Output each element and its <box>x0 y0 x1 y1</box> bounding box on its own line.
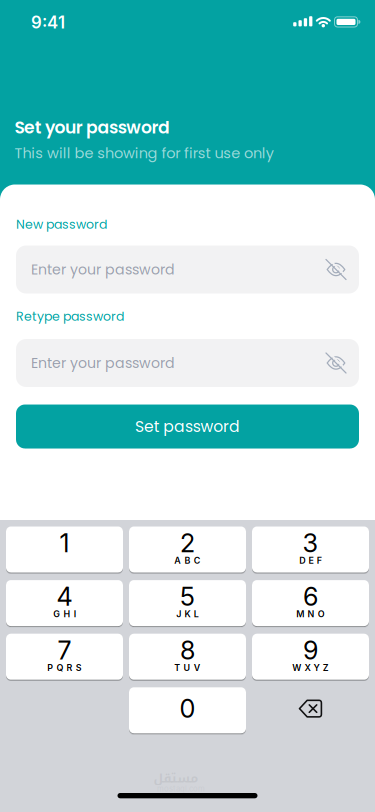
staticText: R <box>67 662 73 673</box>
staticText: 4 <box>56 581 72 612</box>
button[interactable]: 7 <box>6 634 123 680</box>
staticText: Set password <box>135 416 240 437</box>
staticText: T <box>174 662 180 673</box>
staticText: 8 <box>180 635 195 666</box>
button[interactable]: 4 <box>6 580 123 626</box>
staticText: مستقل <box>153 766 198 790</box>
staticText: E <box>308 555 313 566</box>
button[interactable]: 9 <box>252 634 369 680</box>
staticText: 0 <box>179 693 195 724</box>
button[interactable]: 5 <box>129 580 246 626</box>
staticText: P <box>47 662 53 673</box>
staticText: D <box>299 555 305 566</box>
staticText: N <box>307 609 314 619</box>
staticText: B <box>184 555 190 566</box>
staticText: 5 <box>180 581 195 612</box>
staticText: Set your password <box>14 115 170 140</box>
staticText: 9 <box>303 635 318 666</box>
staticText: This will be showing for first use only <box>14 143 274 163</box>
staticText: X <box>304 662 310 673</box>
staticText: Enter your password <box>31 353 175 373</box>
staticText: S <box>76 662 82 673</box>
staticText: Q <box>56 662 63 673</box>
staticText: O <box>318 609 325 619</box>
button[interactable]: 8 <box>129 634 246 680</box>
button[interactable]: Enter your password <box>16 245 359 293</box>
button[interactable]: 2 <box>129 526 246 572</box>
staticText: New password <box>16 215 107 233</box>
button[interactable]: Delete <box>252 687 369 733</box>
button[interactable]: Set password <box>16 404 359 448</box>
staticText: Retype password <box>16 307 124 325</box>
button[interactable]: 0 <box>129 687 246 733</box>
staticText: G <box>53 609 60 619</box>
button[interactable]: Show password <box>325 259 346 280</box>
staticText: 3 <box>302 528 318 558</box>
staticText: J <box>176 609 181 619</box>
staticText: 9:41 <box>31 12 65 32</box>
staticText: 1 <box>59 528 69 558</box>
staticText: C <box>194 555 201 566</box>
staticText: 2 <box>180 528 195 558</box>
staticText: K <box>184 609 190 619</box>
staticText: Z <box>323 662 329 673</box>
staticText: Enter your password <box>31 260 175 279</box>
staticText: L <box>194 609 199 619</box>
staticText: H <box>63 609 70 619</box>
staticText: I <box>74 609 76 619</box>
staticText: M <box>296 609 304 619</box>
staticText: V <box>194 662 201 673</box>
button[interactable]: Show password <box>325 352 346 373</box>
button[interactable]: 1 <box>6 526 123 572</box>
button[interactable]: 6 <box>252 580 369 626</box>
staticText: A <box>174 555 181 566</box>
staticText: F <box>317 555 322 566</box>
staticText: 6 <box>303 581 318 612</box>
staticText: Y <box>314 662 320 673</box>
staticText: W <box>292 662 301 673</box>
button[interactable]: Enter your password <box>16 339 359 387</box>
button[interactable]: 3 <box>252 526 369 572</box>
staticText: U <box>183 662 190 673</box>
staticText: 7 <box>57 635 71 666</box>
